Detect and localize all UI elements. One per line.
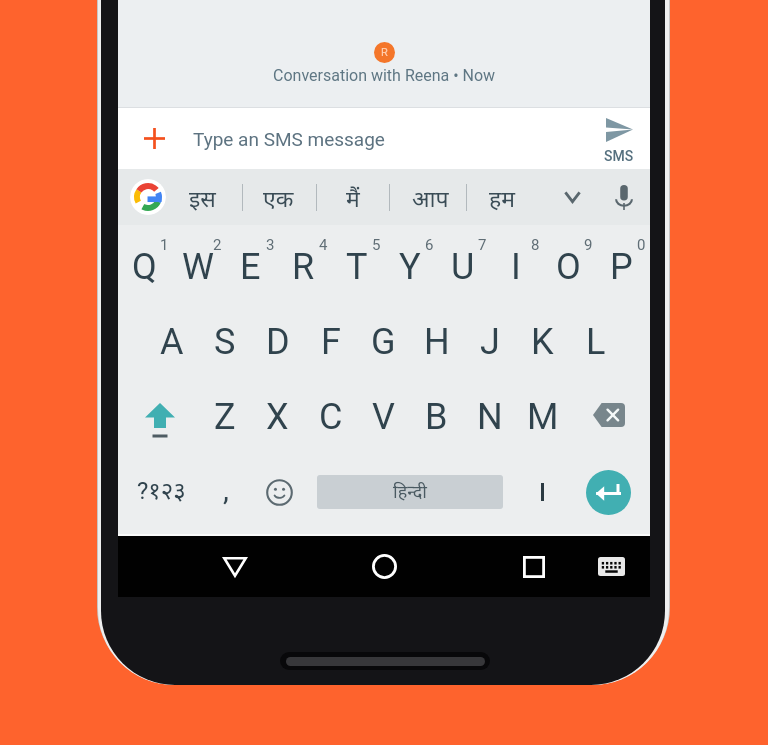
staticText: R: [292, 246, 315, 288]
button[interactable]: [517, 453, 567, 531]
button[interactable]: P: [595, 229, 648, 304]
staticText: N: [477, 396, 503, 438]
button[interactable]: इस: [166, 169, 238, 225]
staticText: Type an SMS message: [193, 128, 385, 150]
button[interactable]: Back: [200, 536, 270, 597]
staticText: K: [531, 321, 554, 363]
button[interactable]: Home: [349, 536, 419, 597]
staticText: ,: [223, 472, 229, 507]
staticText: 6: [425, 236, 434, 254]
button[interactable]: R: [277, 229, 330, 304]
staticText: SMS: [604, 148, 634, 164]
staticText: C: [319, 396, 343, 438]
button[interactable]: G: [357, 304, 410, 379]
button[interactable]: Recents: [499, 536, 569, 597]
button[interactable]: ?१२३: [121, 453, 201, 531]
staticText: U: [451, 246, 475, 288]
button[interactable]: मैं: [317, 169, 389, 225]
staticText: 1: [160, 236, 169, 254]
staticText: B: [425, 396, 448, 438]
staticText: F: [321, 321, 341, 363]
staticText: Q: [132, 246, 157, 288]
staticText: 4: [319, 236, 328, 254]
button[interactable]: L: [569, 304, 622, 379]
button[interactable]: M: [516, 379, 569, 454]
staticText: D: [266, 321, 290, 363]
staticText: G: [371, 321, 396, 363]
staticText: 7: [478, 236, 487, 254]
staticText: एक: [263, 182, 294, 213]
staticText: आप: [412, 182, 449, 213]
button[interactable]: J: [463, 304, 516, 379]
staticText: A: [160, 321, 184, 363]
staticText: Conversation with Reena • Now: [273, 66, 496, 85]
button[interactable]: Send SMS: [588, 108, 650, 169]
staticText: हम: [489, 182, 515, 213]
staticText: R: [381, 46, 388, 59]
button[interactable]: Google: [130, 179, 166, 215]
staticText: I: [511, 246, 521, 288]
button[interactable]: Backspace: [569, 379, 649, 454]
staticText: हिन्दी: [393, 479, 428, 504]
button[interactable]: Switch keyboard: [581, 536, 641, 597]
staticText: H: [424, 321, 450, 363]
button[interactable]: Q: [118, 229, 171, 304]
button[interactable]: U: [436, 229, 489, 304]
button[interactable]: O: [542, 229, 595, 304]
button[interactable]: E: [224, 229, 277, 304]
staticText: X: [266, 396, 289, 438]
staticText: L: [586, 321, 606, 363]
button[interactable]: Z: [198, 379, 251, 454]
button[interactable]: ,: [200, 453, 252, 531]
staticText: J: [480, 321, 500, 363]
staticText: S: [214, 321, 236, 363]
button[interactable]: X: [251, 379, 304, 454]
button[interactable]: H: [410, 304, 463, 379]
button[interactable]: T: [330, 229, 383, 304]
staticText: W: [182, 246, 214, 288]
button[interactable]: N: [463, 379, 516, 454]
button[interactable]: Space: [312, 453, 508, 531]
button[interactable]: Emoji: [254, 453, 304, 531]
button[interactable]: C: [304, 379, 357, 454]
staticText: 3: [266, 236, 275, 254]
button[interactable]: S: [198, 304, 251, 379]
staticText: Y: [399, 246, 421, 288]
button[interactable]: A: [145, 304, 198, 379]
staticText: 8: [531, 236, 540, 254]
staticText: 0: [637, 236, 646, 254]
button[interactable]: W: [171, 229, 224, 304]
button[interactable]: More suggestions: [546, 169, 598, 225]
staticText: P: [610, 246, 633, 288]
button[interactable]: D: [251, 304, 304, 379]
button[interactable]: V: [357, 379, 410, 454]
button[interactable]: K: [516, 304, 569, 379]
staticText: 2: [213, 236, 222, 254]
staticText: 5: [372, 236, 381, 254]
staticText: V: [372, 396, 395, 438]
staticText: O: [556, 246, 581, 288]
button[interactable]: एक: [242, 169, 314, 225]
button[interactable]: Enter: [572, 453, 644, 531]
button[interactable]: Voice input: [598, 169, 650, 225]
staticText: E: [240, 246, 261, 288]
button[interactable]: Add attachment: [118, 108, 190, 169]
staticText: M: [527, 396, 559, 438]
button[interactable]: आप: [394, 169, 466, 225]
staticText: ?१२३: [137, 473, 186, 506]
staticText: मैं: [346, 182, 360, 213]
button[interactable]: हम: [466, 169, 538, 225]
button[interactable]: I: [489, 229, 542, 304]
staticText: 9: [584, 236, 593, 254]
button[interactable]: B: [410, 379, 463, 454]
button[interactable]: Shift: [118, 379, 198, 454]
button[interactable]: Y: [383, 229, 436, 304]
staticText: Z: [214, 396, 236, 438]
button[interactable]: F: [304, 304, 357, 379]
staticText: T: [346, 246, 368, 288]
staticText: इस: [189, 182, 216, 213]
